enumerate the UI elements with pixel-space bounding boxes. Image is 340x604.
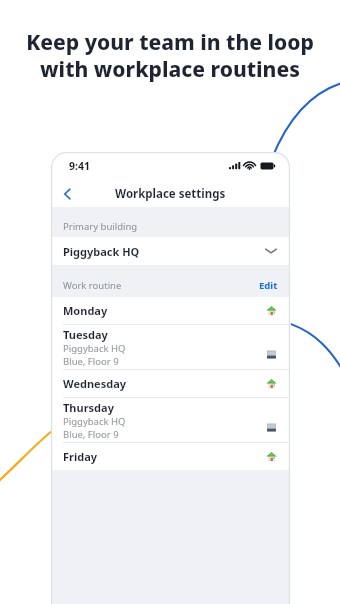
button[interactable]: Thursday	[51, 398, 290, 442]
button[interactable]: Wednesday	[51, 370, 290, 397]
staticText: Friday	[63, 449, 98, 464]
staticText: Piggyback HQ	[63, 244, 140, 259]
staticText: 9:41	[69, 159, 90, 173]
staticText: Workplace settings	[115, 186, 226, 202]
button[interactable]: Piggyback HQ	[51, 237, 290, 265]
button[interactable]: Monday	[51, 297, 290, 324]
staticText: Keep your team in the loop with workplac…	[22, 28, 318, 83]
staticText: Piggyback HQ	[63, 342, 126, 355]
button[interactable]: Friday	[51, 443, 290, 470]
staticText: Primary building	[63, 220, 138, 233]
staticText: Piggyback HQ	[63, 415, 126, 428]
button[interactable]: Tuesday	[51, 325, 290, 369]
staticText: Blue, Floor 9	[63, 428, 119, 441]
staticText: Work routine	[63, 279, 122, 292]
staticText: Tuesday	[63, 327, 108, 342]
button[interactable]: Back	[51, 180, 83, 207]
button[interactable]: Edit	[247, 273, 290, 297]
staticText: Monday	[63, 303, 108, 318]
staticText: Blue, Floor 9	[63, 355, 119, 368]
staticText: Thursday	[63, 400, 114, 415]
staticText: Wednesday	[63, 376, 126, 391]
staticText: Edit	[259, 279, 278, 292]
